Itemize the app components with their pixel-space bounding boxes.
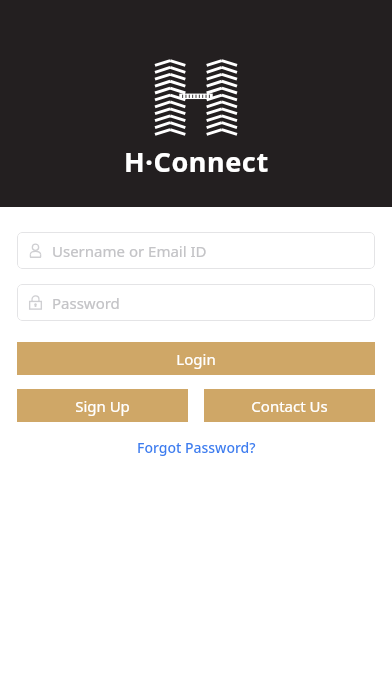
button[interactable]: Contact Us [204, 389, 375, 422]
staticText: Password [52, 293, 120, 313]
button[interactable]: Forgot Password? [129, 435, 264, 460]
staticText: Forgot Password? [137, 438, 256, 457]
staticText: Login [176, 349, 216, 369]
button[interactable]: Sign Up [17, 389, 188, 422]
button[interactable]: Username [17, 232, 375, 269]
other: H-Connect logo [155, 59, 237, 135]
staticText: Sign Up [75, 396, 130, 416]
other: Password [28, 295, 43, 310]
staticText: Username or Email ID [52, 241, 207, 261]
other: Username [28, 243, 43, 258]
staticText: H·Connect [124, 143, 269, 180]
button[interactable]: Password [17, 284, 375, 321]
button[interactable]: Login [17, 342, 375, 375]
staticText: Contact Us [251, 396, 328, 416]
